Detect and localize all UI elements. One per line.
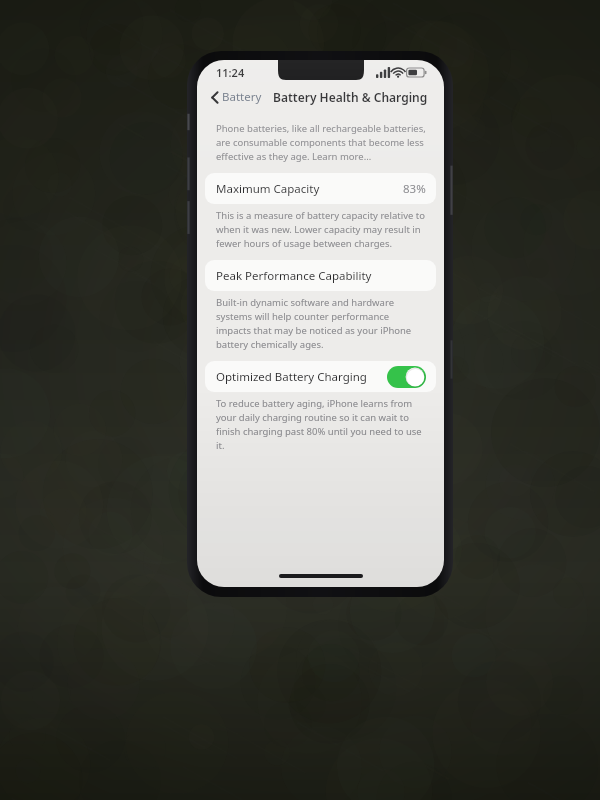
staticText: This is a measure of battery capacity re… [216, 209, 426, 250]
staticText: Battery [222, 89, 262, 105]
staticText: Optimized Battery Charging [216, 369, 367, 385]
staticText: Built-in dynamic software and hardware s… [216, 296, 426, 351]
button[interactable]: Optimized Battery Charging toggle [387, 366, 426, 388]
staticText: Battery Health & Charging [273, 89, 428, 105]
staticText: Peak Performance Capability [216, 268, 372, 284]
staticText: To reduce battery aging, iPhone learns f… [216, 397, 426, 452]
button[interactable]: Peak Performance Capability [205, 260, 436, 291]
staticText: 83% [403, 181, 426, 197]
button[interactable]: Optimized Battery Charging [205, 361, 436, 392]
button[interactable]: Maximum Capacity [205, 173, 436, 204]
staticText: 11:24 [216, 65, 245, 80]
button[interactable]: Battery [208, 87, 265, 107]
staticText: Maximum Capacity [216, 181, 320, 197]
staticText: Phone batteries, like all rechargeable b… [216, 122, 426, 163]
